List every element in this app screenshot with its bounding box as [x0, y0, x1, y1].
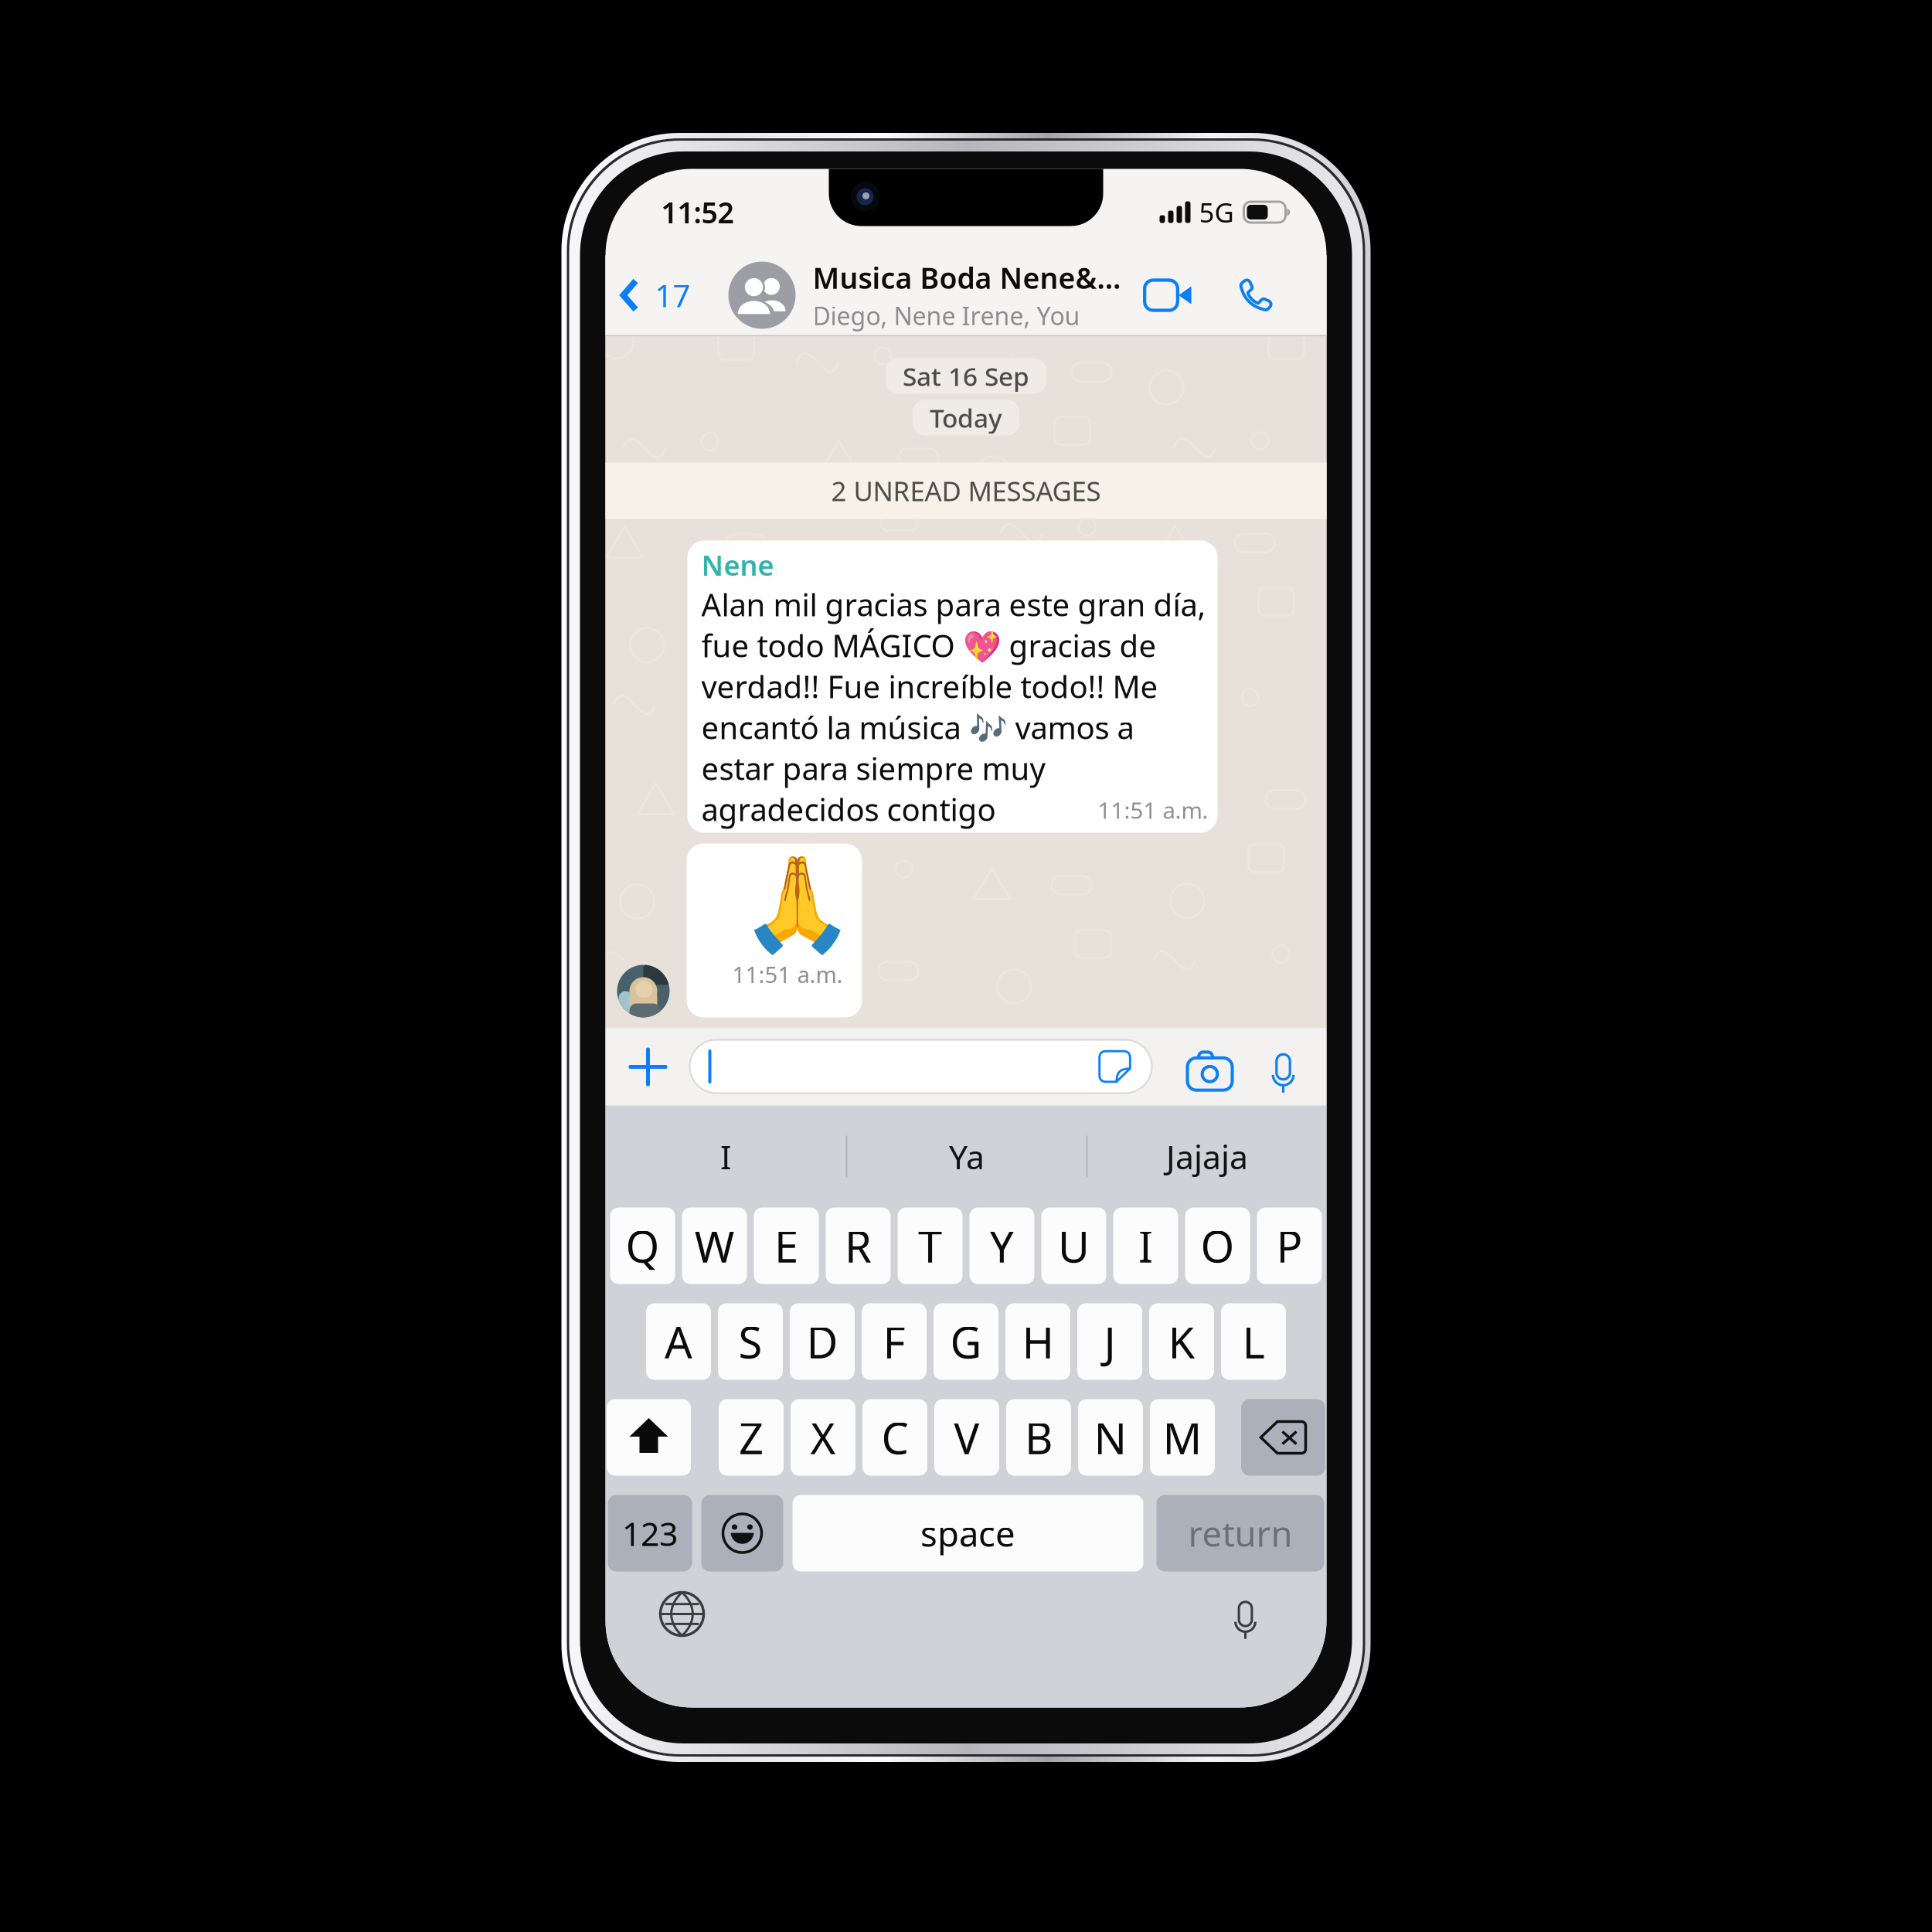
staticText: verdad!! Fue increíble todo!! Me	[701, 666, 1158, 707]
staticText: M	[1163, 1409, 1202, 1466]
staticText: Z	[739, 1409, 764, 1466]
staticText: U	[1058, 1217, 1090, 1275]
staticText: 123	[622, 1511, 678, 1555]
button[interactable]: K	[1149, 1303, 1214, 1380]
staticText: L	[1242, 1313, 1265, 1370]
staticText: Musica Boda Nene&…	[813, 259, 1121, 297]
button[interactable]: R	[826, 1207, 891, 1284]
staticText: 11:51 a.m.	[1098, 795, 1208, 825]
staticText: H	[1022, 1313, 1054, 1370]
button[interactable]: Delete	[1241, 1399, 1325, 1476]
button[interactable]: Voice call	[1213, 255, 1298, 335]
staticText: T	[918, 1217, 942, 1275]
staticText: Jajaja	[1166, 1135, 1248, 1178]
button[interactable]: J	[1077, 1303, 1142, 1380]
staticText: G	[950, 1313, 982, 1370]
staticText: 2 UNREAD MESSAGES	[831, 473, 1101, 509]
button[interactable]: Jajaja	[1088, 1105, 1327, 1207]
staticText: D	[806, 1313, 838, 1370]
button[interactable]: F	[862, 1303, 927, 1380]
button[interactable]: return	[1156, 1495, 1324, 1571]
staticText: Ya	[949, 1135, 985, 1178]
button[interactable]: E	[754, 1207, 819, 1284]
staticText: J	[1104, 1313, 1116, 1370]
staticText: Today	[930, 401, 1002, 435]
button[interactable]: Voice message	[1248, 1028, 1318, 1105]
button[interactable]: Emoji	[701, 1495, 783, 1571]
button[interactable]: Video call	[1119, 255, 1204, 335]
button[interactable]: Musica Boda Nene&…	[728, 255, 1122, 335]
button[interactable]: Ya	[847, 1105, 1086, 1207]
staticText: A	[665, 1313, 692, 1370]
staticText: N	[1094, 1409, 1127, 1466]
staticText: 🙏	[740, 851, 855, 957]
button[interactable]: S	[718, 1303, 783, 1380]
button[interactable]: Message field	[690, 1040, 1152, 1093]
button[interactable]: Switch keyboard	[632, 1571, 732, 1656]
staticText: S	[738, 1313, 762, 1370]
button[interactable]: P	[1257, 1207, 1322, 1284]
staticText: estar para siempre muy	[701, 748, 1045, 789]
button[interactable]: O	[1185, 1207, 1250, 1284]
staticText: W	[694, 1217, 735, 1275]
staticText: X	[810, 1409, 836, 1466]
staticText: 11:52	[661, 193, 734, 231]
staticText: space	[920, 1510, 1015, 1556]
staticText: C	[881, 1409, 908, 1466]
staticText: Q	[626, 1217, 660, 1275]
button[interactable]: H	[1005, 1303, 1070, 1380]
button[interactable]: Camera	[1175, 1028, 1245, 1105]
staticText: Diego, Nene Irene, You	[813, 299, 1080, 332]
button[interactable]: W	[682, 1207, 747, 1284]
staticText: return	[1188, 1510, 1293, 1556]
staticText: Sat 16 Sep	[903, 359, 1029, 393]
button[interactable]: Z	[719, 1399, 784, 1476]
staticText: 17	[655, 275, 690, 316]
button[interactable]: Shift	[607, 1399, 691, 1476]
button[interactable]: Attach	[612, 1028, 684, 1105]
staticText: I	[720, 1135, 731, 1178]
staticText: K	[1168, 1313, 1195, 1370]
button[interactable]: B	[1006, 1399, 1071, 1476]
staticText: Alan mil gracias para este gran día,	[701, 584, 1206, 625]
staticText: fue todo MÁGICO 💖 gracias de	[701, 625, 1156, 666]
staticText: Nene	[701, 546, 774, 583]
staticText: R	[845, 1217, 872, 1275]
staticText: Y	[990, 1217, 1014, 1275]
staticText: E	[774, 1217, 798, 1275]
button[interactable]: 123	[608, 1495, 692, 1571]
staticText: 5G	[1199, 194, 1234, 230]
staticText: F	[883, 1313, 905, 1370]
button[interactable]: N	[1078, 1399, 1143, 1476]
button[interactable]: G	[934, 1303, 998, 1380]
button[interactable]: Dictation	[1195, 1571, 1296, 1656]
button[interactable]: X	[791, 1399, 855, 1476]
button[interactable]: I	[605, 1105, 846, 1207]
button[interactable]: 17	[605, 255, 704, 335]
button[interactable]: M	[1150, 1399, 1215, 1476]
button[interactable]: A	[646, 1303, 711, 1380]
staticText: agradecidos contigo	[701, 789, 996, 830]
button[interactable]: T	[898, 1207, 963, 1284]
button[interactable]: C	[862, 1399, 927, 1476]
button[interactable]: V	[934, 1399, 999, 1476]
button[interactable]: I	[1113, 1207, 1178, 1284]
button[interactable]: Y	[969, 1207, 1034, 1284]
staticText: O	[1201, 1217, 1235, 1275]
staticText: 11:51 a.m.	[732, 959, 843, 989]
staticText: encantó la música 🎶 vamos a	[701, 707, 1134, 748]
staticText: P	[1276, 1217, 1303, 1275]
button[interactable]: Q	[610, 1207, 675, 1284]
staticText: V	[954, 1409, 980, 1466]
staticText: B	[1025, 1409, 1053, 1466]
button[interactable]: L	[1221, 1303, 1286, 1380]
button[interactable]: U	[1041, 1207, 1106, 1284]
button[interactable]: space	[793, 1495, 1143, 1571]
staticText: I	[1138, 1217, 1153, 1275]
button[interactable]: D	[790, 1303, 855, 1380]
